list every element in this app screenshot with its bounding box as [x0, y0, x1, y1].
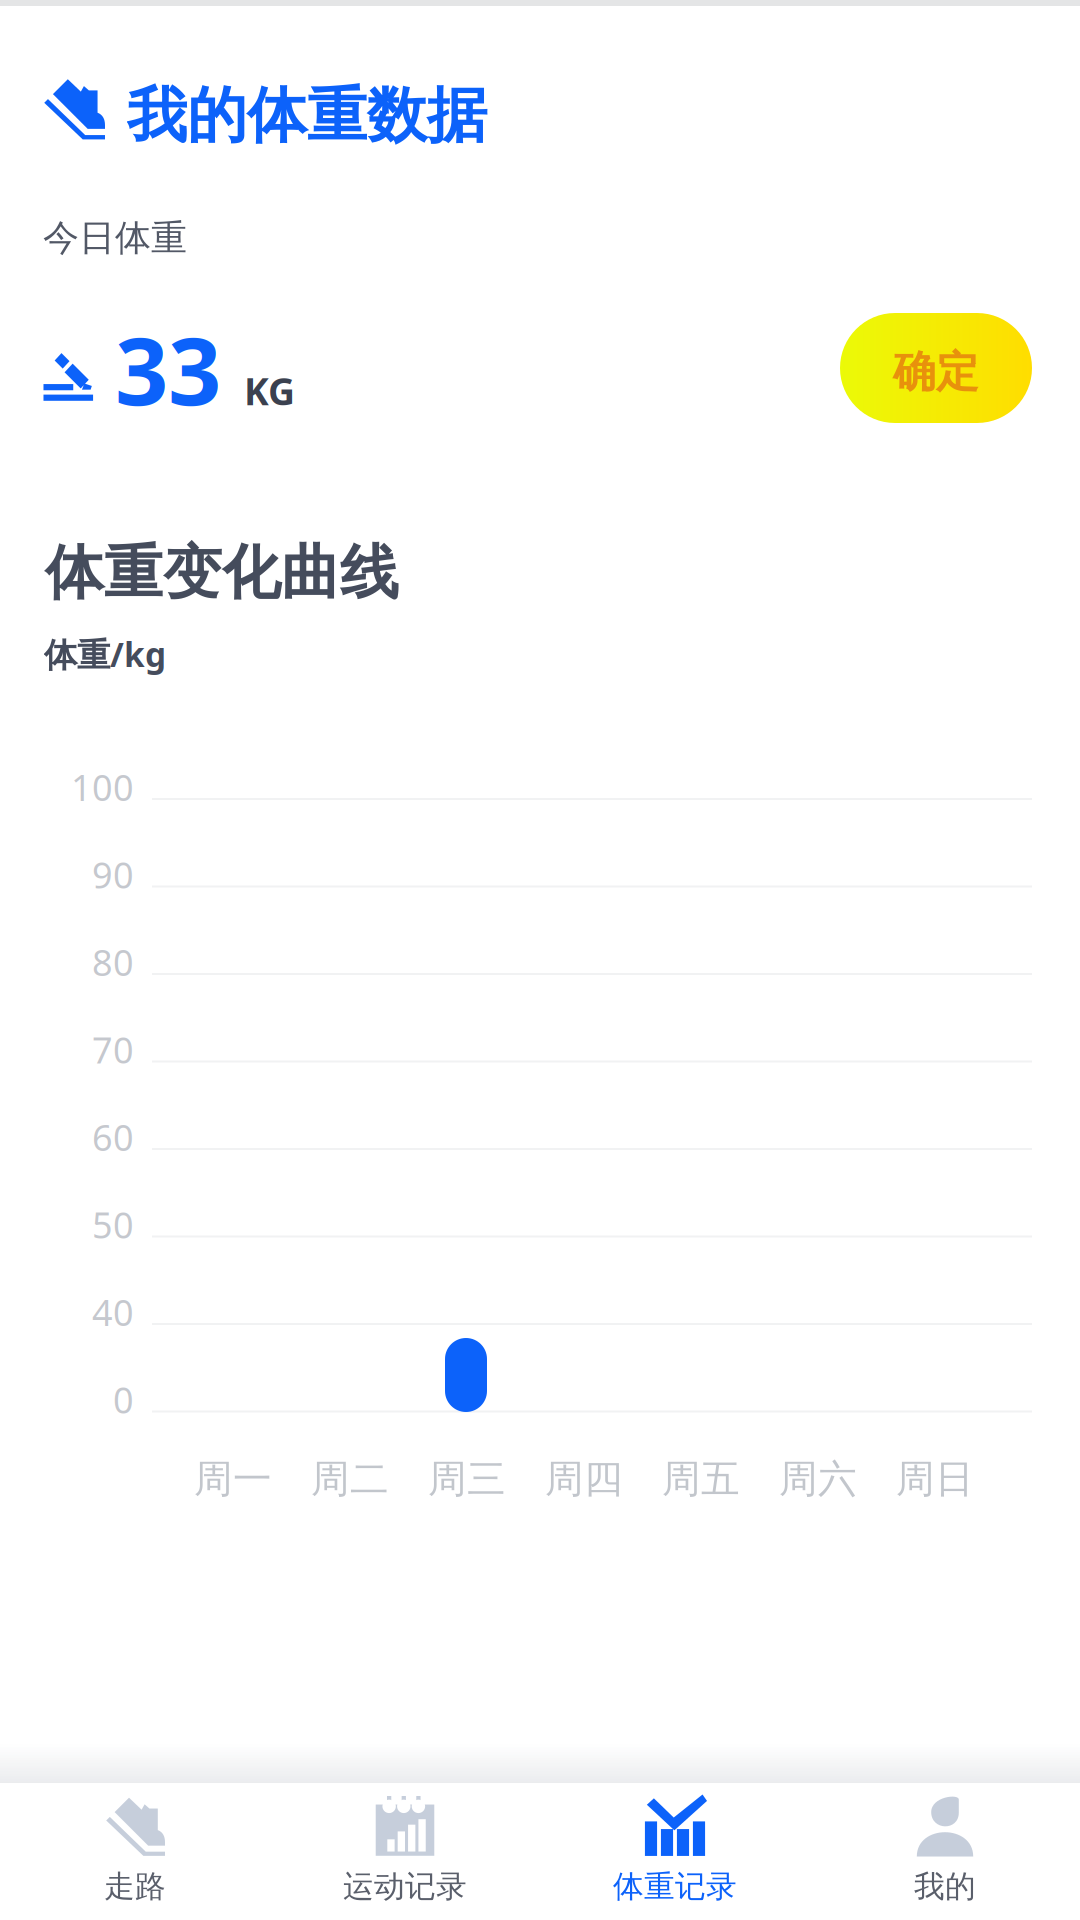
staticText: 周六: [779, 1455, 857, 1503]
staticText: 70: [92, 1026, 134, 1073]
button[interactable]: 走路: [0, 1782, 270, 1915]
staticText: KG: [244, 366, 295, 416]
staticText: 33: [115, 307, 221, 431]
staticText: 100: [71, 763, 134, 811]
staticText: 60: [92, 1113, 134, 1161]
staticText: 周二: [311, 1455, 389, 1503]
staticText: 周五: [662, 1455, 740, 1503]
staticText: 体重记录: [613, 1868, 737, 1905]
staticText: 确定: [893, 346, 979, 398]
staticText: 周日: [896, 1455, 974, 1503]
button[interactable]: 33: [37, 313, 337, 423]
staticText: 我的: [914, 1868, 976, 1905]
staticText: 40: [92, 1288, 134, 1336]
staticText: 周三: [428, 1455, 506, 1503]
staticText: 体重/kg: [44, 632, 166, 676]
button[interactable]: 体重记录: [540, 1782, 810, 1915]
button[interactable]: 运动记录: [270, 1782, 540, 1915]
button[interactable]: 我的: [810, 1782, 1080, 1915]
staticText: 周四: [545, 1455, 623, 1503]
staticText: 0: [113, 1376, 134, 1423]
staticText: 80: [92, 938, 134, 986]
staticText: 今日体重: [43, 216, 187, 260]
staticText: 50: [92, 1201, 134, 1248]
staticText: 我的体重数据: [127, 79, 487, 153]
button[interactable]: 确定: [840, 313, 1032, 423]
staticText: 体重变化曲线: [45, 537, 399, 609]
staticText: 周一: [194, 1455, 272, 1503]
staticText: 运动记录: [343, 1868, 467, 1905]
staticText: 90: [92, 851, 134, 898]
staticText: 走路: [104, 1868, 166, 1905]
